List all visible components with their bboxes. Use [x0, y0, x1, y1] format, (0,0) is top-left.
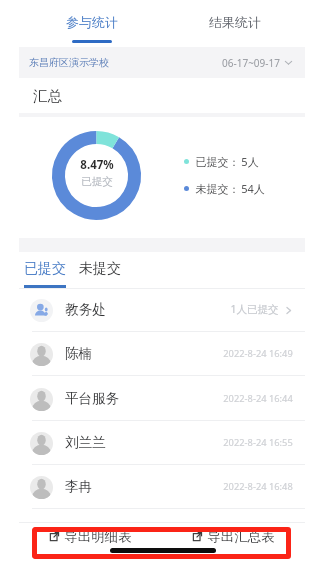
staticText: 2022-8-24 16:49: [223, 347, 293, 360]
staticText: 刘兰兰: [65, 434, 106, 451]
button[interactable]: 未提交: [76, 252, 124, 288]
staticText: 参与统计: [66, 14, 118, 30]
staticText: 06-17~09-17: [222, 56, 280, 70]
button[interactable]: 陈楠: [19, 332, 305, 376]
staticText: 导出明细表: [64, 528, 132, 545]
staticText: 未提交：: [194, 181, 241, 196]
staticText: 结果统计: [209, 14, 261, 30]
staticText: 东昌府区演示学校: [29, 56, 109, 69]
button[interactable]: 已提交: [21, 252, 69, 288]
staticText: 1人已提交: [230, 302, 279, 316]
staticText: 8.47%: [80, 157, 114, 173]
staticText: 2022-8-24 16:44: [223, 392, 293, 405]
button[interactable]: 导出明细表: [19, 523, 162, 549]
staticText: 未提交: [79, 260, 121, 278]
staticText: 教务处: [65, 301, 106, 318]
button[interactable]: 导出汇总表: [162, 523, 305, 549]
staticText: 平台服务: [65, 390, 119, 407]
button[interactable]: 参与统计: [43, 0, 140, 47]
staticText: 2022-8-24 16:48: [223, 480, 293, 493]
button[interactable]: 李冉: [19, 465, 305, 509]
staticText: 陈楠: [65, 345, 92, 362]
button[interactable]: 结果统计: [186, 0, 283, 47]
button[interactable]: 教务处: [19, 288, 305, 332]
staticText: 54人: [241, 181, 265, 196]
staticText: 导出汇总表: [207, 528, 275, 545]
staticText: 已提交: [81, 175, 113, 188]
button[interactable]: 刘兰兰: [19, 421, 305, 465]
button[interactable]: 平台服务: [19, 377, 305, 421]
staticText: 5人: [241, 154, 259, 169]
staticText: 2022-8-24 16:55: [223, 436, 293, 449]
staticText: 已提交: [24, 260, 66, 278]
staticText: 已提交：: [194, 154, 241, 169]
staticText: 李冉: [65, 478, 92, 495]
staticText: 汇总: [33, 87, 62, 105]
